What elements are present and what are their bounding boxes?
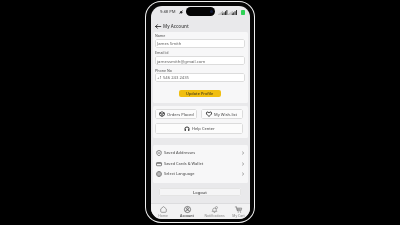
button[interactable]: My Wish-list <box>201 109 243 119</box>
button[interactable]: Orders Placed <box>155 109 197 119</box>
staticText: My Wish-list <box>214 112 238 117</box>
staticText: Name <box>155 33 166 38</box>
button[interactable]: James Smith <box>155 39 245 48</box>
button[interactable]: Back <box>153 22 162 31</box>
staticText: jamessmith@gmail.com <box>157 58 206 64</box>
button[interactable]: Update Profile <box>179 90 221 97</box>
staticText: Saved Cards & Wallet <box>164 161 204 166</box>
staticText: Update Profile <box>186 91 214 96</box>
button[interactable]: Logout <box>159 188 241 196</box>
staticText: Email id <box>155 50 169 55</box>
staticText: +1 546 243 2435 <box>157 75 190 81</box>
staticText: Account <box>180 213 194 218</box>
staticText: Orders Placed <box>167 112 194 117</box>
staticText: 9:48 PM <box>160 9 176 15</box>
staticText: Phone No <box>155 68 172 73</box>
staticText: My Account <box>163 23 189 29</box>
staticText: Home <box>158 213 168 218</box>
button[interactable]: Home <box>151 204 175 219</box>
staticText: Saved Addresses <box>164 150 196 155</box>
staticText: Help Center <box>192 126 215 131</box>
staticText: Notifications <box>204 213 225 218</box>
staticText: Logout <box>193 190 207 195</box>
button[interactable]: Saved Cards & Wallet <box>153 158 248 169</box>
button[interactable]: Notifications <box>202 204 226 219</box>
button[interactable]: Saved Addresses <box>153 147 248 158</box>
button[interactable]: Help Center <box>155 123 243 134</box>
staticText: Select Language <box>164 171 195 176</box>
button[interactable]: My Cart <box>226 204 250 219</box>
staticText: My Cart <box>232 213 245 218</box>
staticText: James Smith <box>157 41 182 47</box>
button[interactable]: Account <box>175 204 199 219</box>
button[interactable]: Select Language <box>153 168 248 179</box>
button[interactable]: jamessmith@gmail.com <box>155 56 245 65</box>
button[interactable]: +1 546 243 2435 <box>155 73 245 82</box>
